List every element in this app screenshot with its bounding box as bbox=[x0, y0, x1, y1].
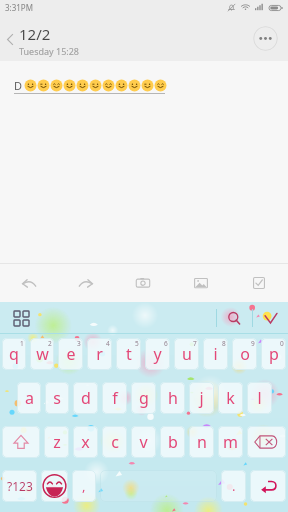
staticText: 12/2 bbox=[19, 24, 51, 44]
staticText: 6 bbox=[164, 339, 168, 348]
button[interactable]: Redo bbox=[57, 264, 114, 302]
staticText: 9 bbox=[251, 339, 255, 348]
staticText: Tuesday 15:28 bbox=[19, 45, 80, 57]
other: Back bbox=[3, 32, 18, 47]
staticText: a bbox=[25, 387, 34, 409]
button[interactable]: Back bbox=[3, 15, 288, 61]
staticText: j bbox=[199, 387, 204, 409]
button[interactable]: More options bbox=[253, 26, 278, 51]
button[interactable]: g bbox=[131, 382, 156, 414]
staticText: f bbox=[112, 387, 118, 409]
staticText: x bbox=[81, 431, 90, 453]
button[interactable]: Emoji bbox=[41, 470, 68, 502]
staticText: l bbox=[257, 387, 262, 409]
button[interactable]: Shift bbox=[2, 426, 40, 458]
button[interactable]: c bbox=[102, 426, 127, 458]
button[interactable]: n bbox=[189, 426, 214, 458]
staticText: g bbox=[139, 387, 149, 409]
staticText: v bbox=[139, 431, 148, 453]
staticText: b bbox=[168, 431, 178, 453]
button[interactable]: y bbox=[145, 338, 170, 370]
staticText: 7 bbox=[193, 339, 197, 348]
staticText: n bbox=[197, 431, 207, 453]
staticText: 3 bbox=[77, 339, 81, 348]
staticText: ?123 bbox=[7, 478, 33, 494]
button[interactable]: r bbox=[87, 338, 112, 370]
button[interactable]: ?123 bbox=[2, 470, 37, 502]
staticText: D bbox=[14, 78, 23, 93]
button[interactable]: h bbox=[160, 382, 185, 414]
button[interactable]: v bbox=[131, 426, 156, 458]
button[interactable]: l bbox=[247, 382, 272, 414]
button[interactable]: e bbox=[58, 338, 83, 370]
button[interactable]: s bbox=[45, 382, 69, 414]
staticText: u bbox=[182, 343, 192, 365]
button[interactable]: Sticker bbox=[253, 303, 288, 333]
button[interactable]: d bbox=[73, 382, 98, 414]
button[interactable]: z bbox=[44, 426, 69, 458]
staticText: t bbox=[126, 343, 132, 365]
staticText: e bbox=[66, 343, 76, 365]
staticText: r bbox=[96, 343, 103, 365]
button[interactable]: i bbox=[203, 338, 228, 370]
button[interactable]: m bbox=[218, 426, 243, 458]
button[interactable]: Checklist bbox=[230, 264, 288, 302]
button[interactable]: Space bbox=[100, 470, 217, 502]
staticText: o bbox=[240, 343, 250, 365]
staticText: i bbox=[213, 343, 218, 365]
button[interactable]: o bbox=[232, 338, 257, 370]
staticText: y bbox=[153, 343, 162, 365]
button[interactable]: w bbox=[30, 338, 54, 370]
button[interactable]: Search bbox=[217, 303, 252, 333]
staticText: s bbox=[53, 387, 61, 409]
button[interactable]: f bbox=[102, 382, 127, 414]
button[interactable]: t bbox=[116, 338, 141, 370]
button[interactable]: b bbox=[160, 426, 185, 458]
staticText: w bbox=[36, 343, 49, 365]
staticText: d bbox=[81, 387, 91, 409]
button[interactable]: Enter bbox=[250, 470, 286, 502]
button[interactable]: Backspace bbox=[247, 426, 286, 458]
button[interactable]: u bbox=[174, 338, 199, 370]
staticText: . bbox=[232, 477, 236, 495]
button[interactable]: p bbox=[261, 338, 286, 370]
staticText: 4 bbox=[106, 339, 110, 348]
staticText: p bbox=[269, 343, 279, 365]
staticText: 0 bbox=[280, 339, 284, 348]
staticText: q bbox=[9, 343, 19, 365]
staticText: , bbox=[82, 477, 86, 495]
button[interactable]: q bbox=[2, 338, 26, 370]
button[interactable]: . bbox=[221, 470, 246, 502]
staticText: 5 bbox=[135, 339, 139, 348]
staticText: h bbox=[168, 387, 178, 409]
staticText: 8 bbox=[222, 339, 226, 348]
staticText: z bbox=[53, 431, 61, 453]
button[interactable]: , bbox=[72, 470, 96, 502]
staticText: 3:31PM bbox=[5, 2, 33, 13]
button[interactable]: Keyboard themes bbox=[9, 306, 33, 330]
staticText: 1 bbox=[20, 339, 24, 348]
staticText: c bbox=[111, 431, 119, 453]
staticText: k bbox=[226, 387, 235, 409]
button[interactable]: a bbox=[17, 382, 41, 414]
staticText: 2 bbox=[48, 339, 52, 348]
button[interactable]: k bbox=[218, 382, 243, 414]
button[interactable]: Image bbox=[172, 264, 230, 302]
staticText: m bbox=[223, 431, 238, 453]
button[interactable]: j bbox=[189, 382, 214, 414]
button[interactable]: Camera bbox=[114, 264, 172, 302]
button[interactable]: Undo bbox=[0, 264, 57, 302]
button[interactable]: x bbox=[73, 426, 98, 458]
